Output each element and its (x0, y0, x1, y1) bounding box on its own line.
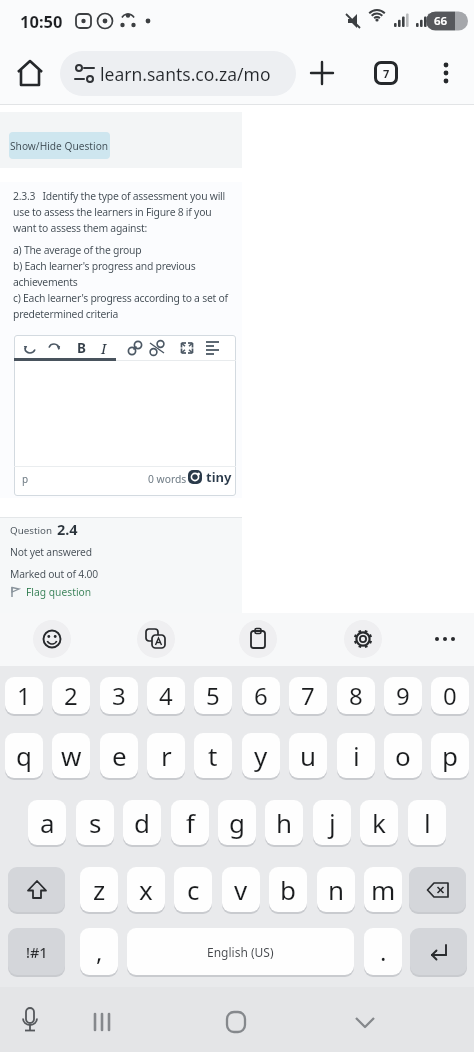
button[interactable]: h (265, 800, 303, 845)
staticText: j (329, 805, 336, 840)
staticText: b (280, 872, 296, 907)
button[interactable]: c (174, 867, 212, 912)
button[interactable]: Flag question (8, 584, 118, 600)
button[interactable]: !#1 (8, 928, 65, 975)
button[interactable]: i (337, 733, 375, 778)
staticText: 4 (159, 679, 173, 712)
staticText: u (300, 738, 317, 773)
button[interactable]: s (76, 800, 114, 845)
staticText: a) The average of the group (13, 243, 142, 257)
staticText: want to assess them against: (13, 221, 148, 235)
button[interactable]: 7 (289, 677, 327, 714)
button[interactable]: 1 (5, 677, 43, 714)
staticText: Show/Hide Question (10, 139, 109, 153)
button[interactable] (33, 620, 71, 658)
button[interactable]: 9 (384, 677, 422, 714)
button[interactable] (8, 867, 65, 912)
staticText: !#1 (26, 942, 48, 962)
button[interactable]: l (408, 800, 446, 845)
button[interactable]: 6 (242, 677, 280, 714)
staticText: use to assess the learners in Figure 8 i… (13, 205, 212, 219)
button[interactable] (84, 1004, 120, 1040)
staticText: i (353, 738, 360, 773)
staticText: Question (10, 524, 52, 537)
button[interactable]: o (384, 733, 422, 778)
staticText: 0 words (148, 472, 187, 486)
button[interactable]: , (80, 928, 118, 975)
button[interactable]: 5 (194, 677, 232, 714)
staticText: y (254, 738, 268, 773)
staticText: I (101, 339, 107, 358)
button[interactable]: 8 (337, 677, 375, 714)
button[interactable]: learn.sants.co.za/mo (60, 51, 296, 96)
button[interactable]: k (360, 800, 398, 845)
button[interactable]: e (100, 733, 138, 778)
staticText: v (234, 872, 248, 907)
button[interactable]: u (289, 733, 327, 778)
button[interactable] (409, 867, 466, 912)
staticText: 2 (64, 679, 78, 712)
button[interactable]: n (317, 867, 355, 912)
button[interactable]: 0 (431, 677, 469, 714)
button[interactable]: 2 (52, 677, 90, 714)
button[interactable]: a (28, 800, 66, 845)
button[interactable]: x (127, 867, 165, 912)
staticText: x (139, 872, 153, 907)
staticText: z (93, 872, 106, 907)
staticText: tiny (206, 468, 232, 486)
staticText: , (96, 935, 103, 968)
staticText: h (276, 805, 293, 840)
staticText: l (424, 805, 431, 840)
button[interactable]: f (171, 800, 209, 845)
staticText: 5 (206, 679, 220, 712)
staticText: 66 (434, 13, 448, 29)
button[interactable] (410, 928, 467, 975)
button[interactable] (434, 58, 458, 88)
staticText: B (77, 339, 86, 357)
button[interactable]: b (269, 867, 307, 912)
button[interactable] (137, 620, 175, 658)
staticText: b) Each learner's progress and previous (13, 259, 196, 273)
staticText: 2.3.3 Identify the type of assessment yo… (13, 189, 225, 203)
button[interactable] (347, 1004, 383, 1040)
staticText: s (89, 805, 102, 840)
staticText: p (22, 472, 29, 486)
button[interactable] (218, 1004, 254, 1040)
button[interactable]: g (218, 800, 256, 845)
button[interactable]: m (364, 867, 402, 912)
button[interactable] (306, 58, 338, 88)
button[interactable]: z (80, 867, 118, 912)
staticText: Flag question (26, 585, 92, 599)
button[interactable] (12, 1004, 48, 1040)
button[interactable]: 4 (147, 677, 185, 714)
staticText: r (161, 738, 172, 773)
button[interactable]: English (US) (127, 928, 354, 975)
button[interactable]: r (147, 733, 185, 778)
staticText: 7 (383, 66, 390, 81)
button[interactable]: Show/Hide Question (9, 132, 110, 159)
staticText: m (371, 872, 396, 907)
staticText: c) Each learner's progress according to … (13, 291, 228, 305)
button[interactable]: y (242, 733, 280, 778)
button[interactable]: v (222, 867, 260, 912)
button[interactable]: t (194, 733, 232, 778)
button[interactable]: . (364, 928, 402, 975)
staticText: 3 (112, 679, 126, 712)
button[interactable]: d (123, 800, 161, 845)
button[interactable]: 7 (374, 61, 398, 85)
button[interactable]: q (5, 733, 43, 778)
button[interactable] (12, 58, 48, 88)
button[interactable]: w (52, 733, 90, 778)
staticText: q (16, 738, 32, 773)
staticText: 0 (443, 679, 457, 712)
button[interactable] (344, 620, 382, 658)
staticText: f (186, 805, 195, 840)
button[interactable]: p (431, 733, 469, 778)
staticText: learn.sants.co.za/mo (100, 62, 271, 86)
button[interactable]: j (313, 800, 351, 845)
button[interactable]: 3 (100, 677, 138, 714)
staticText: Marked out of 4.00 (10, 567, 98, 581)
button[interactable] (239, 620, 277, 658)
staticText: e (112, 738, 127, 773)
staticText: achievements (13, 275, 78, 289)
